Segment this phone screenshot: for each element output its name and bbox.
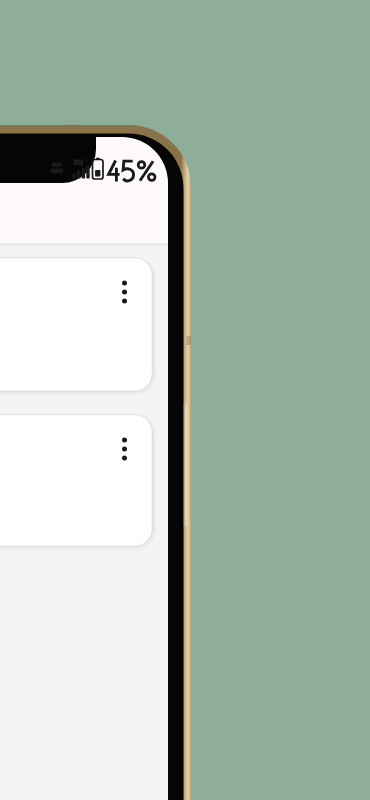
button[interactable]: More options [108,272,142,312]
button[interactable]: List item 2 [0,415,152,546]
button[interactable]: List item 1 [0,258,152,391]
button[interactable]: More options [108,430,142,470]
